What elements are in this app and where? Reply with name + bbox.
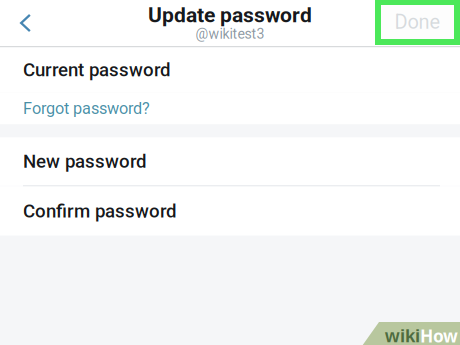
button[interactable]: Back — [0, 0, 50, 46]
button[interactable]: Forgot password? — [0, 92, 460, 124]
staticText: Done — [394, 10, 440, 34]
staticText: Confirm password — [23, 200, 177, 222]
button[interactable]: New password — [0, 137, 460, 185]
button[interactable]: Done — [375, 0, 460, 45]
staticText: Update password — [148, 3, 312, 27]
staticText: Current password — [23, 59, 171, 81]
staticText: @wikitest3 — [195, 26, 264, 42]
staticText: wiki — [385, 325, 420, 345]
button[interactable]: Confirm password — [0, 186, 460, 235]
button[interactable]: Current password — [0, 47, 460, 92]
staticText: Forgot password? — [23, 99, 150, 118]
staticText: New password — [23, 150, 147, 172]
staticText: How — [420, 324, 458, 345]
